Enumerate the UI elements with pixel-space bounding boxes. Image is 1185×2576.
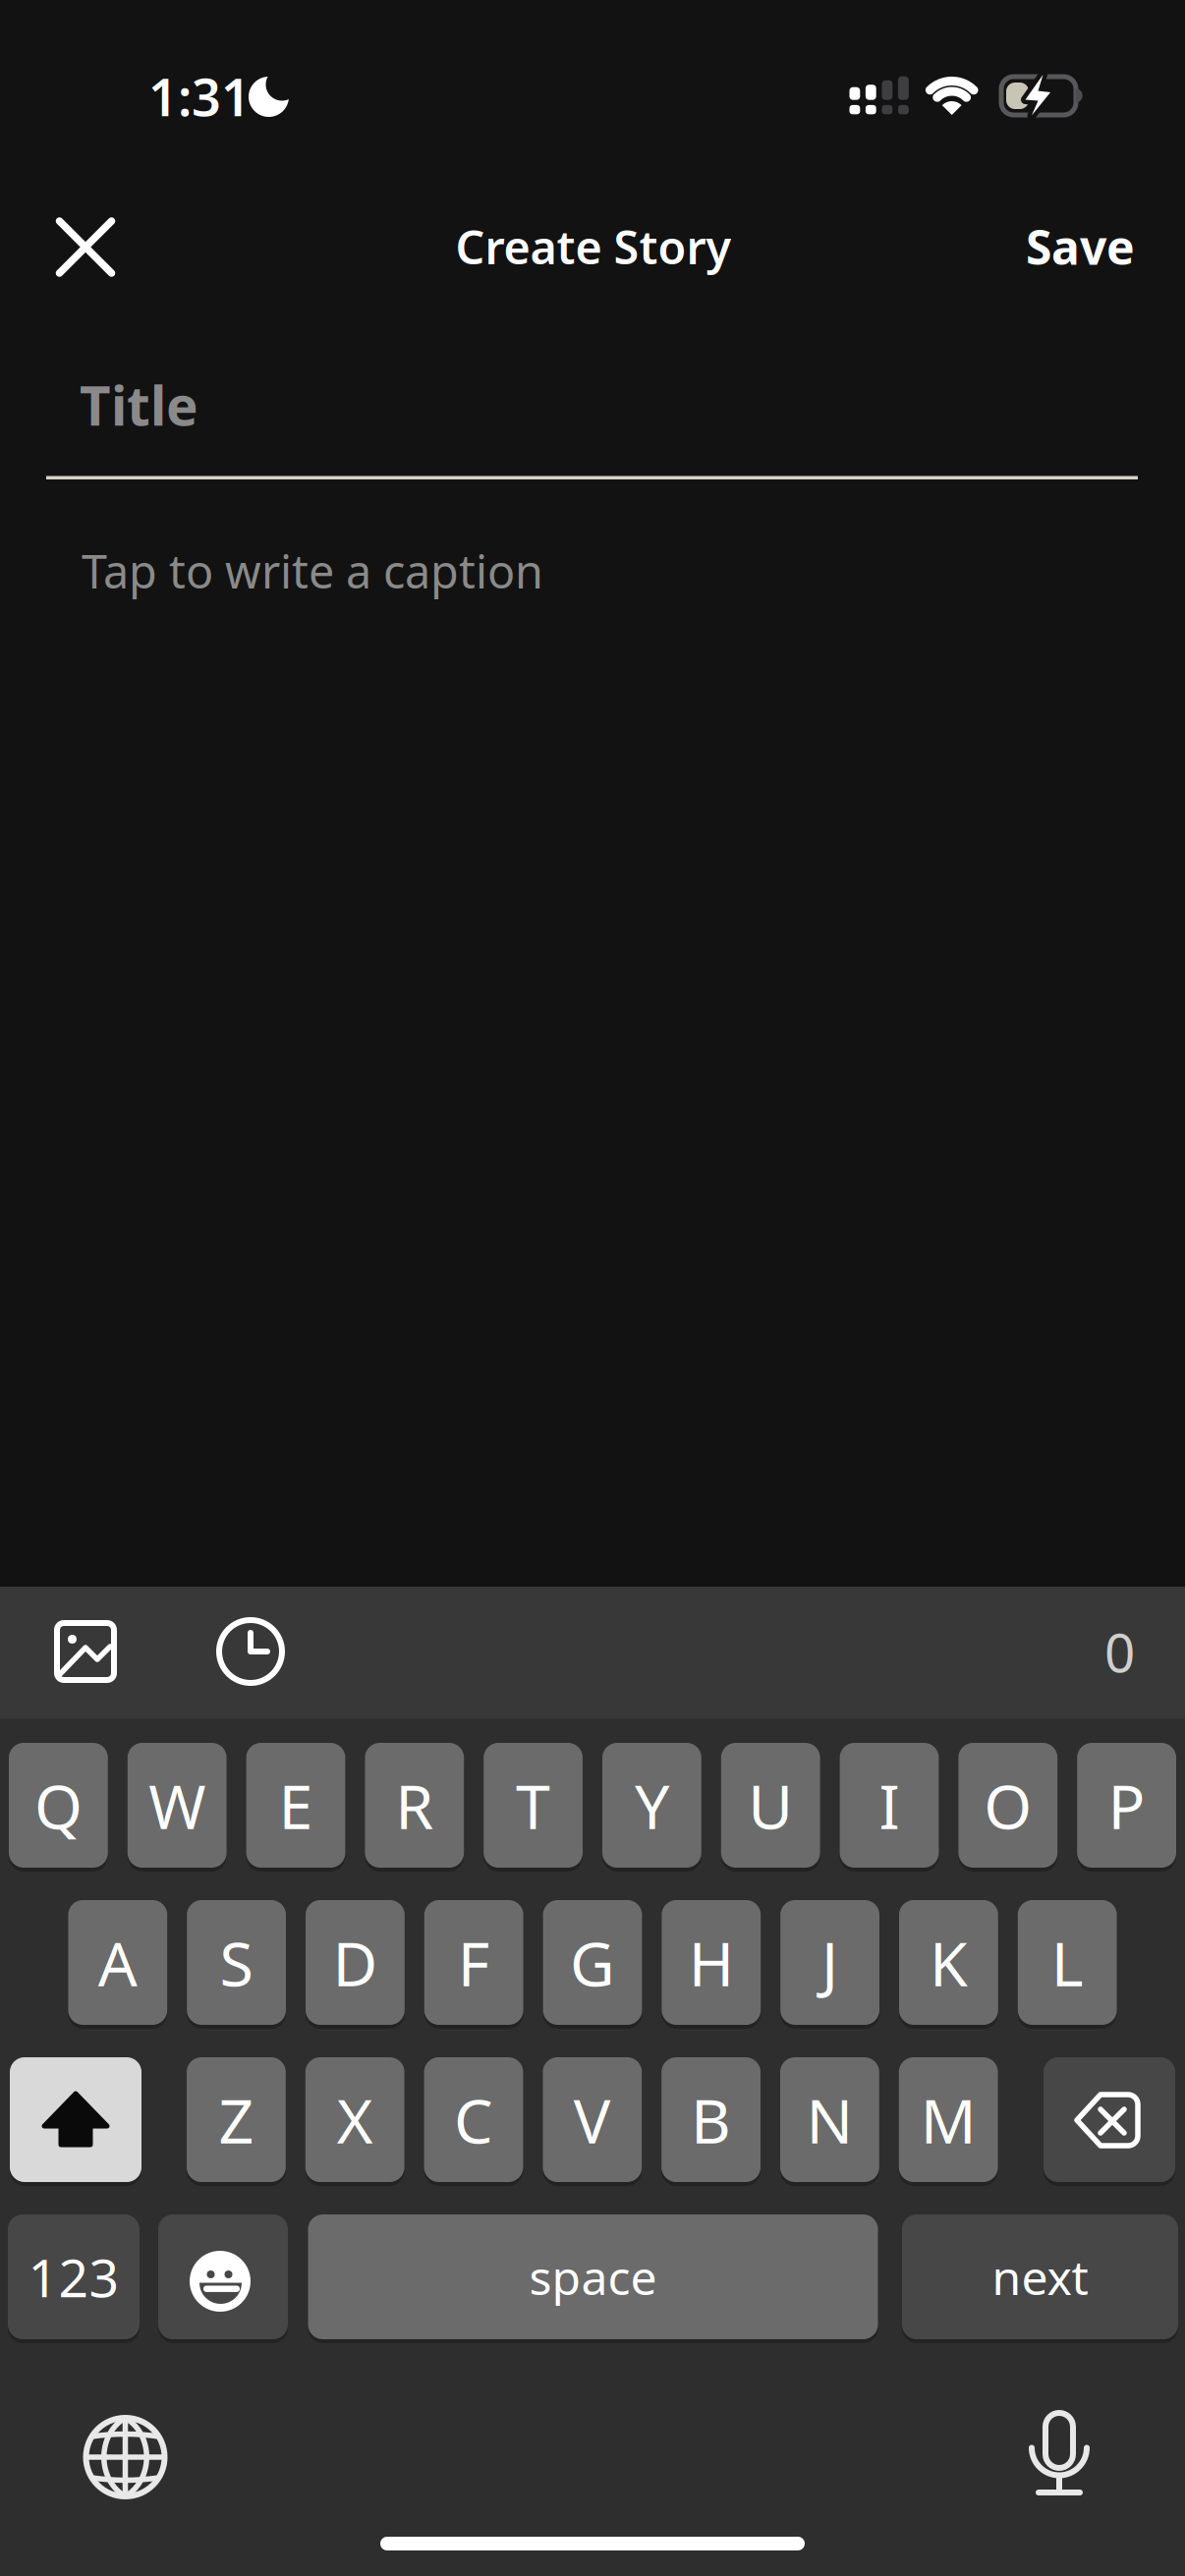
button[interactable]: next xyxy=(902,2214,1178,2339)
staticText: 1:31 xyxy=(148,62,251,130)
staticText: Save xyxy=(1026,215,1135,278)
staticText: Z xyxy=(219,2079,254,2161)
button[interactable]: Next keyboard xyxy=(83,2415,168,2499)
staticText: Y xyxy=(635,1764,669,1846)
button[interactable]: A xyxy=(68,1900,167,2025)
staticText: C xyxy=(454,2079,493,2161)
staticText: G xyxy=(570,1922,615,2003)
staticText: U xyxy=(748,1764,793,1846)
staticText: space xyxy=(529,2246,657,2308)
staticText: L xyxy=(1051,1922,1083,2003)
staticText: T xyxy=(516,1764,550,1846)
staticText: V xyxy=(574,2079,611,2161)
staticText: Create Story xyxy=(455,216,732,277)
button[interactable]: I xyxy=(840,1743,939,1868)
button[interactable]: S xyxy=(187,1900,286,2025)
staticText: K xyxy=(929,1922,968,2003)
staticText: P xyxy=(1108,1764,1145,1846)
button[interactable]: Z xyxy=(187,2057,286,2182)
staticText: W xyxy=(149,1764,206,1846)
button[interactable]: O xyxy=(958,1743,1057,1868)
button[interactable]: T xyxy=(484,1743,583,1868)
staticText: Tap to write a caption xyxy=(82,540,543,601)
button[interactable]: Title xyxy=(80,369,198,440)
staticText: O xyxy=(984,1764,1032,1846)
button[interactable]: C xyxy=(424,2057,523,2182)
button[interactable]: Y xyxy=(602,1743,701,1868)
button[interactable]: F xyxy=(424,1900,523,2025)
staticText: F xyxy=(458,1922,490,2003)
staticText: M xyxy=(920,2079,976,2161)
staticText: N xyxy=(806,2079,853,2161)
staticText: R xyxy=(395,1764,434,1846)
button[interactable]: M xyxy=(899,2057,998,2182)
button[interactable]: L xyxy=(1018,1900,1117,2025)
button[interactable]: Delete xyxy=(1044,2057,1175,2182)
button[interactable]: N xyxy=(780,2057,879,2182)
staticText: Title xyxy=(80,369,198,440)
button[interactable]: Save xyxy=(1026,215,1135,278)
staticText: X xyxy=(337,2079,373,2161)
staticText: A xyxy=(98,1922,137,2003)
button[interactable]: P xyxy=(1077,1743,1176,1868)
button[interactable]: H xyxy=(662,1900,761,2025)
button[interactable]: J xyxy=(780,1900,879,2025)
button[interactable]: Emoji xyxy=(158,2214,288,2339)
staticText: E xyxy=(279,1764,313,1846)
button[interactable]: Q xyxy=(9,1743,108,1868)
button[interactable]: W xyxy=(128,1743,227,1868)
staticText: 123 xyxy=(28,2242,119,2312)
staticText: Q xyxy=(34,1764,82,1846)
button[interactable]: X xyxy=(305,2057,404,2182)
button[interactable]: K xyxy=(899,1900,998,2025)
staticText: I xyxy=(879,1764,900,1846)
staticText: 0 xyxy=(1104,1616,1135,1687)
staticText: B xyxy=(691,2079,731,2161)
button[interactable]: R xyxy=(365,1743,464,1868)
button[interactable]: 123 xyxy=(8,2214,140,2339)
staticText: S xyxy=(220,1922,253,2003)
button[interactable]: Dictation xyxy=(1030,2410,1089,2498)
staticText: D xyxy=(333,1922,378,2003)
staticText: J xyxy=(822,1922,838,2003)
button[interactable]: E xyxy=(246,1743,345,1868)
button[interactable]: B xyxy=(661,2057,761,2182)
button[interactable]: U xyxy=(721,1743,820,1868)
button[interactable]: Schedule xyxy=(216,1617,285,1686)
staticText: H xyxy=(689,1922,734,2003)
button[interactable]: D xyxy=(306,1900,405,2025)
button[interactable]: Shift xyxy=(10,2057,141,2182)
button[interactable]: Close xyxy=(57,219,113,275)
button[interactable]: Tap to write a caption xyxy=(82,540,543,601)
staticText: next xyxy=(992,2246,1088,2308)
button[interactable]: G xyxy=(543,1900,642,2025)
button[interactable]: space xyxy=(308,2214,878,2339)
button[interactable]: V xyxy=(543,2057,642,2182)
button[interactable]: Add photo xyxy=(57,1623,114,1680)
